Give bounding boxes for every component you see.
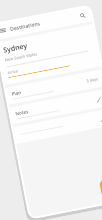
button[interactable]: Plan [5, 69, 102, 105]
staticText: Arrival [7, 68, 19, 75]
button[interactable]: Edit [94, 95, 102, 104]
staticText: Notes [15, 108, 29, 116]
button[interactable]: Edit [13, 108, 102, 144]
staticText: New South Wales [5, 51, 38, 62]
button[interactable]: Menu [0, 26, 8, 36]
button[interactable]: Sydney [0, 24, 101, 85]
staticText: Destinations [10, 20, 41, 33]
staticText: Plan [11, 89, 22, 97]
button[interactable]: Edit [97, 114, 102, 124]
button[interactable]: Search [77, 10, 88, 21]
button[interactable]: Notes [9, 89, 102, 124]
button[interactable]: Add destination [99, 178, 102, 197]
staticText: 3 days [86, 76, 99, 83]
staticText: Sydney [2, 41, 29, 56]
